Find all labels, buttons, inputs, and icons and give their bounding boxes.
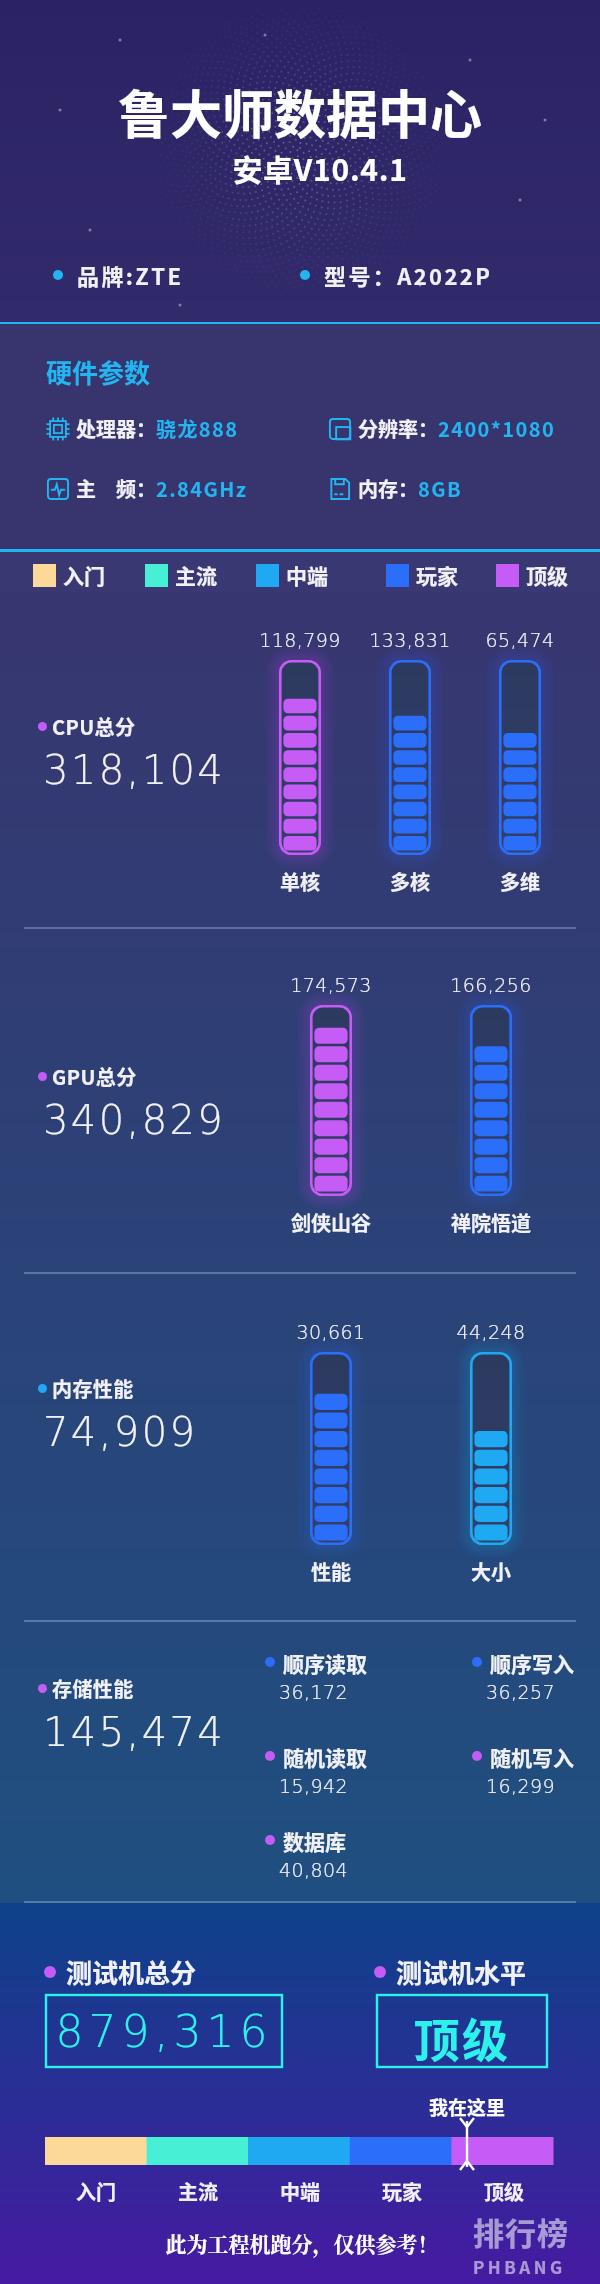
- staticText: 174,573: [261, 974, 401, 996]
- staticText: 入门: [63, 560, 105, 590]
- staticText: 测试机总分: [66, 1953, 197, 1991]
- staticText: 硬件参数: [46, 353, 151, 391]
- staticText: 145,474: [43, 1709, 226, 1756]
- staticText: 型号：A2022P: [324, 259, 493, 291]
- staticText: 318,104: [43, 747, 226, 794]
- staticText: 65,474: [450, 629, 590, 651]
- staticText: 879,316: [46, 2006, 282, 2057]
- staticText: 36,172: [279, 1681, 348, 1703]
- staticText: 此为工程机跑分，仅供参考！: [2, 2228, 600, 2258]
- staticText: 测试机水平: [396, 1953, 527, 1991]
- staticText: 中端: [286, 560, 328, 590]
- staticText: 顺序写入: [490, 1648, 574, 1678]
- staticText: 顶级: [377, 2004, 547, 2071]
- staticText: 随机写入: [490, 1742, 574, 1772]
- staticText: 主流: [147, 2177, 249, 2206]
- staticText: 主 频：: [76, 474, 156, 503]
- staticText: 性能: [251, 1557, 411, 1586]
- staticText: 顺序读取: [283, 1648, 367, 1678]
- staticText: 随机读取: [283, 1742, 367, 1772]
- staticText: 118,799: [230, 629, 370, 651]
- staticText: 16,299: [486, 1775, 555, 1797]
- staticText: 排行榜: [473, 2209, 569, 2254]
- staticText: 入门: [45, 2177, 147, 2206]
- staticText: 顶级: [453, 2177, 555, 2206]
- staticText: 中端: [249, 2177, 351, 2206]
- staticText: 74,909: [43, 1409, 198, 1456]
- staticText: 340,829: [43, 1097, 226, 1144]
- staticText: 鲁大师数据中心: [0, 74, 600, 149]
- staticText: 2400*1080: [438, 414, 556, 443]
- staticText: 15,942: [279, 1775, 348, 1797]
- staticText: 2.84GHz: [156, 474, 248, 503]
- staticText: 大小: [411, 1557, 571, 1586]
- staticText: 40,804: [279, 1859, 348, 1881]
- staticText: 多核: [330, 867, 490, 896]
- staticText: 44,248: [421, 1321, 561, 1343]
- staticText: 禅院悟道: [411, 1208, 571, 1237]
- staticText: CPU总分: [52, 712, 136, 741]
- staticText: 单核: [220, 867, 380, 896]
- staticText: 分辨率：: [358, 414, 438, 443]
- staticText: 存储性能: [52, 1674, 134, 1703]
- staticText: 我在这里: [422, 2093, 512, 2121]
- staticText: 数据库: [283, 1826, 346, 1856]
- staticText: 玩家: [351, 2177, 453, 2206]
- staticText: 内存：: [358, 474, 418, 503]
- staticText: 多维: [440, 867, 600, 896]
- staticText: GPU总分: [52, 1062, 137, 1091]
- staticText: 133,831: [340, 629, 480, 651]
- staticText: 166,256: [421, 974, 561, 996]
- staticText: PHBANG: [473, 2254, 566, 2279]
- staticText: 剑侠山谷: [251, 1208, 411, 1237]
- staticText: 骁龙888: [156, 414, 239, 443]
- staticText: 玩家: [416, 560, 458, 590]
- staticText: 主流: [175, 560, 217, 590]
- staticText: 36,257: [486, 1681, 555, 1703]
- staticText: 安卓V10.4.1: [20, 146, 600, 189]
- staticText: 处理器：: [76, 414, 156, 443]
- staticText: 品牌:ZTE: [77, 259, 184, 291]
- staticText: 30,661: [261, 1321, 401, 1343]
- staticText: 内存性能: [52, 1374, 134, 1403]
- staticText: 8GB: [418, 474, 462, 503]
- staticText: 顶级: [526, 560, 568, 590]
